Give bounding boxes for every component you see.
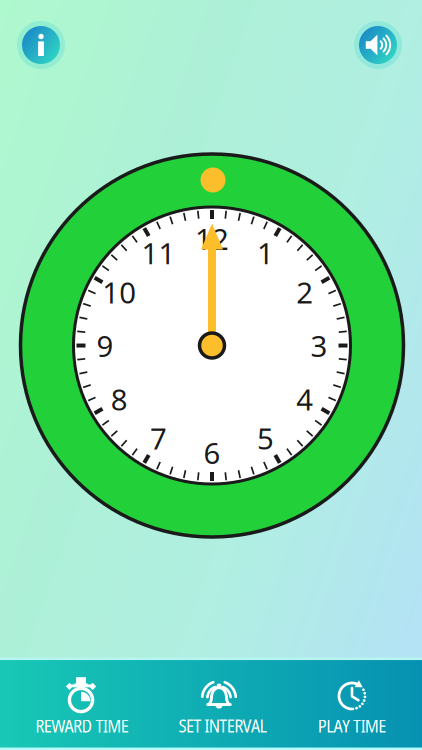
- button[interactable]: SET INTERVAL: [0, 0, 422, 750]
- staticText: 3: [310, 326, 327, 365]
- staticText: 2: [296, 272, 313, 311]
- staticText: 8: [111, 379, 128, 418]
- staticText: 7: [150, 419, 167, 458]
- staticText: SET INTERVAL: [178, 713, 267, 738]
- staticText: 6: [203, 433, 220, 472]
- button[interactable]: PLAY TIME: [0, 0, 422, 750]
- staticText: 5: [257, 419, 274, 458]
- staticText: 9: [96, 326, 113, 365]
- button[interactable]: REWARD TIME: [0, 0, 422, 750]
- staticText: PLAY TIME: [318, 713, 386, 738]
- staticText: 12: [195, 219, 229, 258]
- staticText: 4: [296, 379, 313, 418]
- button[interactable]: Info: [12, 16, 70, 74]
- staticText: 10: [102, 272, 136, 311]
- staticText: 11: [141, 233, 175, 272]
- staticText: REWARD TIME: [35, 713, 129, 738]
- button[interactable]: Sound: [349, 16, 407, 74]
- staticText: 1: [257, 233, 274, 272]
